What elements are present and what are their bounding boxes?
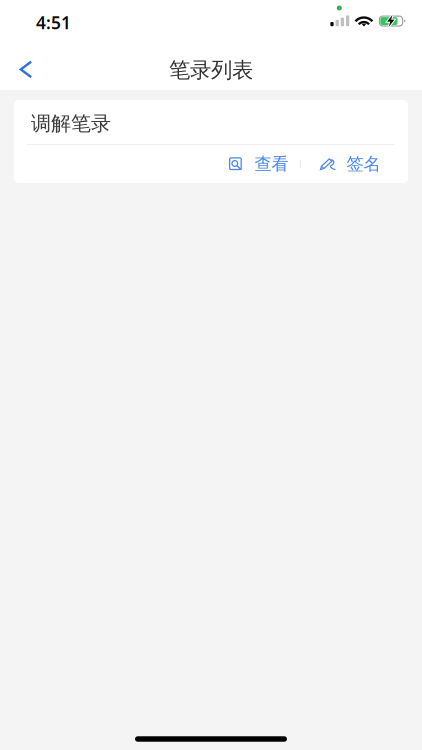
staticText: 调解笔录 <box>31 111 111 136</box>
staticText: 笔录列表 <box>169 57 253 83</box>
button[interactable]: 查看 <box>230 144 289 184</box>
staticText: 4:51 <box>36 11 71 34</box>
button[interactable]: 签名 <box>320 144 380 184</box>
staticText: 查看 <box>255 153 289 175</box>
button[interactable]: Back <box>0 44 48 90</box>
staticText: 签名 <box>346 153 380 175</box>
